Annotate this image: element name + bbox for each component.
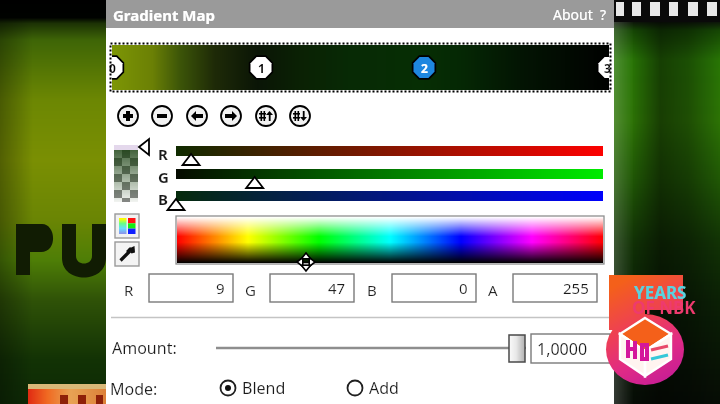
staticText: 0: [459, 278, 468, 298]
button[interactable]: Gradient Map: [106, 0, 614, 28]
button[interactable]: Colour field: [176, 216, 604, 264]
button[interactable]: Spread down: [289, 105, 311, 127]
staticText: YEARS: [634, 281, 687, 304]
button[interactable]: Add stop: [117, 105, 139, 127]
staticText: R: [124, 280, 134, 300]
staticText: 3: [604, 60, 611, 76]
button[interactable]: Move left: [186, 105, 208, 127]
staticText: A: [488, 280, 498, 300]
button[interactable]: Palette: [115, 214, 139, 238]
button[interactable]: B value: [392, 274, 476, 302]
button[interactable]: Amount slider: [210, 330, 536, 366]
staticText: G: [158, 167, 169, 187]
button[interactable]: Help: [594, 0, 612, 28]
staticText: 0: [109, 60, 116, 76]
staticText: 47: [328, 278, 346, 298]
staticText: Add: [369, 377, 399, 399]
staticText: B: [158, 189, 168, 209]
staticText: Blend: [242, 377, 286, 399]
button[interactable]: Gradient strip: [110, 42, 610, 94]
staticText: About: [553, 5, 593, 24]
staticText: R: [158, 144, 168, 164]
button[interactable]: About: [547, 0, 599, 28]
button[interactable]: Add: [346, 376, 399, 400]
staticText: 1,0000: [537, 338, 588, 360]
staticText: 2: [421, 60, 428, 76]
staticText: B: [367, 280, 377, 300]
button[interactable]: G value: [270, 274, 354, 302]
button[interactable]: Opacity: [110, 134, 158, 206]
staticText: G: [245, 280, 256, 300]
button[interactable]: Move right: [220, 105, 242, 127]
staticText: Gradient Map: [113, 5, 215, 25]
button[interactable]: Blend: [219, 376, 286, 400]
button[interactable]: Remove stop: [151, 105, 173, 127]
staticText: 9: [216, 278, 225, 298]
staticText: OF NBK: [632, 296, 696, 319]
staticText: Mode:: [110, 378, 158, 400]
staticText: 1: [258, 60, 265, 76]
button[interactable]: Spread up: [255, 105, 277, 127]
button[interactable]: Amount value: [531, 334, 610, 363]
staticText: Amount:: [112, 337, 177, 359]
button[interactable]: Colour picker: [115, 242, 139, 266]
button[interactable]: R value: [149, 274, 233, 302]
button[interactable]: A value: [513, 274, 597, 302]
staticText: 255: [563, 278, 589, 298]
staticText: ?: [600, 5, 607, 24]
